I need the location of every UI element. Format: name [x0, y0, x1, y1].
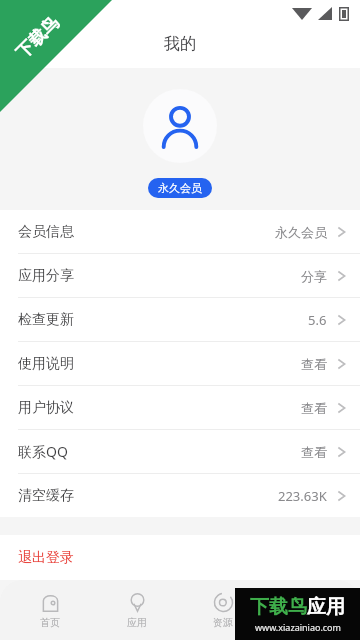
- staticText: 查看: [301, 400, 327, 416]
- staticText: www.xiazainiao.com: [255, 621, 341, 633]
- staticText: 应用: [127, 616, 147, 629]
- button[interactable]: 首页: [14, 592, 86, 629]
- other: 资源: [213, 592, 234, 613]
- staticText: 我的: [0, 34, 360, 54]
- staticText: 查看: [301, 444, 327, 460]
- staticText: 永久会员: [158, 181, 202, 195]
- staticText: 应用: [307, 595, 345, 619]
- staticText: 清空缓存: [18, 487, 74, 505]
- button[interactable]: 资源: [187, 592, 259, 629]
- staticText: 223.63K: [278, 487, 327, 505]
- other: 首页: [40, 592, 61, 613]
- staticText: 下载鸟: [250, 595, 307, 619]
- staticText: 下载鸟: [12, 12, 63, 63]
- staticText: 资源: [213, 616, 233, 629]
- staticText: 会员信息: [18, 223, 74, 241]
- button[interactable]: 会员信息: [0, 210, 360, 254]
- button[interactable]: [143, 89, 217, 163]
- other: 应用: [127, 592, 148, 613]
- staticText: 使用说明: [18, 355, 74, 373]
- staticText: 分享: [301, 268, 327, 284]
- staticText: 查看: [301, 356, 327, 372]
- button[interactable]: 我的: [274, 592, 346, 629]
- staticText: 退出登录: [18, 549, 74, 567]
- staticText: 5.6: [308, 311, 327, 329]
- button[interactable]: 联系QQ: [0, 430, 360, 474]
- staticText: 联系QQ: [18, 442, 68, 461]
- button[interactable]: 应用分享: [0, 254, 360, 298]
- button[interactable]: 用户协议: [0, 386, 360, 430]
- other: 我的: [300, 592, 321, 613]
- staticText: 首页: [40, 616, 60, 629]
- button[interactable]: 使用说明: [0, 342, 360, 386]
- button[interactable]: 清空缓存: [0, 474, 360, 517]
- button[interactable]: 应用: [101, 592, 173, 629]
- staticText: 用户协议: [18, 399, 74, 417]
- staticText: 检查更新: [18, 311, 74, 329]
- button[interactable]: 永久会员: [148, 178, 212, 198]
- staticText: 我的: [300, 616, 320, 629]
- staticText: 永久会员: [275, 224, 327, 240]
- button[interactable]: 退出登录: [0, 535, 360, 580]
- staticText: 应用分享: [18, 267, 74, 285]
- button[interactable]: 检查更新: [0, 298, 360, 342]
